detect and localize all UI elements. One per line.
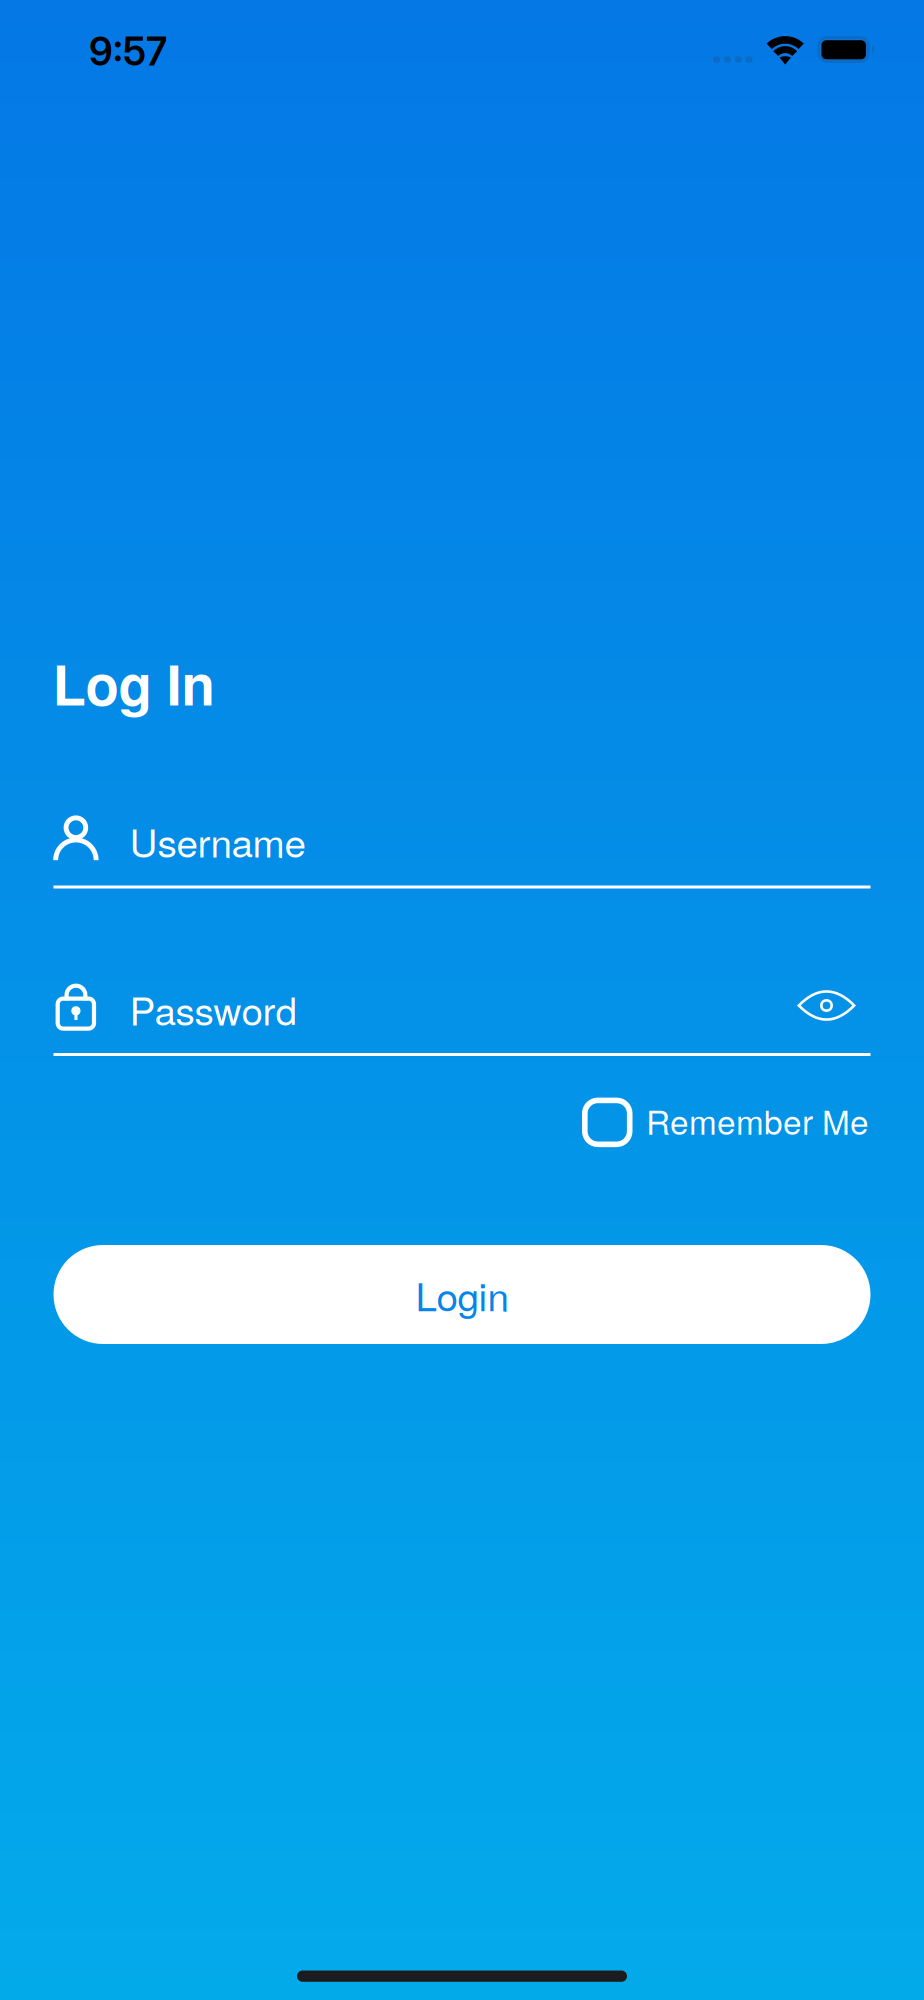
button[interactable]: Remember Me — [582, 1095, 872, 1151]
staticText: Log In — [52, 644, 214, 722]
button[interactable]: Password — [53, 981, 743, 1067]
button[interactable]: Username — [53, 813, 870, 899]
staticText: Username — [129, 813, 305, 868]
staticText: Remember Me — [646, 1097, 869, 1144]
button[interactable]: Show password — [782, 970, 870, 1042]
staticText: Password — [129, 981, 296, 1036]
button[interactable]: Login — [53, 1245, 870, 1344]
staticText: Login — [415, 1267, 508, 1322]
staticText: 9:57 — [89, 28, 167, 75]
